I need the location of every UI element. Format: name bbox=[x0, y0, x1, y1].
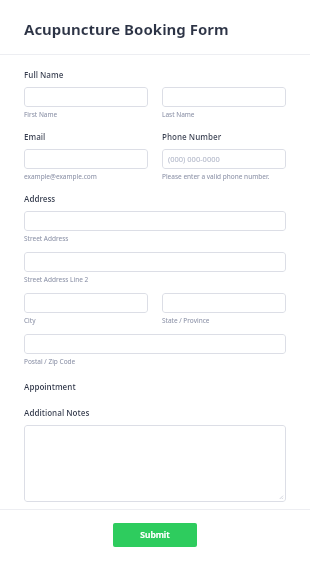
staticText: (000) 000-0000 bbox=[168, 154, 220, 164]
staticText: Street Address Line 2 bbox=[24, 275, 89, 284]
staticText: Postal / Zip Code bbox=[24, 357, 76, 366]
staticText: Appointment bbox=[24, 381, 76, 392]
button[interactable] bbox=[24, 211, 286, 231]
button[interactable] bbox=[24, 425, 286, 502]
staticText: First Name bbox=[24, 110, 58, 119]
button[interactable] bbox=[24, 149, 148, 169]
staticText: City bbox=[24, 316, 36, 325]
button[interactable] bbox=[24, 334, 286, 354]
staticText: example@example.com bbox=[24, 172, 97, 181]
button[interactable] bbox=[24, 293, 148, 313]
button[interactable] bbox=[24, 252, 286, 272]
button[interactable] bbox=[24, 87, 148, 107]
staticText: Submit bbox=[140, 529, 170, 541]
button[interactable]: Submit bbox=[113, 523, 197, 547]
staticText: Last Name bbox=[162, 110, 195, 119]
staticText: State / Province bbox=[162, 316, 210, 325]
staticText: Please enter a valid phone number. bbox=[162, 172, 270, 181]
staticText: Full Name bbox=[24, 69, 64, 80]
button[interactable]: (000) 000-0000 bbox=[162, 149, 286, 169]
staticText: Address bbox=[24, 193, 56, 204]
button[interactable] bbox=[162, 87, 286, 107]
staticText: Phone Number bbox=[162, 131, 222, 142]
staticText: Email bbox=[24, 131, 46, 142]
staticText: Additional Notes bbox=[24, 407, 90, 418]
staticText: Street Address bbox=[24, 234, 69, 243]
staticText: Acupuncture Booking Form bbox=[24, 19, 229, 39]
button[interactable] bbox=[162, 293, 286, 313]
